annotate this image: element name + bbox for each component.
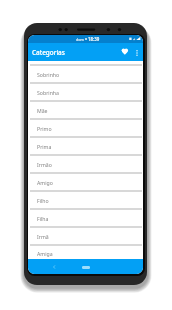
button[interactable]: Amiga	[28, 244, 143, 259]
staticText: Amiga	[37, 250, 53, 257]
staticText: 18:39	[88, 36, 100, 42]
button[interactable]: Home	[79, 262, 93, 272]
button[interactable]: Favorites	[117, 44, 131, 61]
button[interactable]: Sobrinha	[28, 82, 143, 100]
button[interactable]: Primo	[28, 118, 143, 136]
button[interactable]: Mãe	[28, 100, 143, 118]
staticText: Primo	[37, 125, 52, 132]
button[interactable]: More options	[131, 44, 143, 61]
button[interactable]: Irmão	[28, 154, 143, 172]
staticText: Sobrinho	[37, 71, 60, 78]
button[interactable]: Back	[49, 262, 58, 271]
button[interactable]: Prima	[28, 136, 143, 154]
staticText: dom	[76, 37, 84, 42]
staticText: Irmã	[37, 233, 49, 240]
staticText: Filha	[37, 215, 49, 222]
staticText: Filho	[37, 197, 49, 204]
button[interactable]: Filha	[28, 208, 143, 226]
staticText: Prima	[37, 143, 52, 150]
button[interactable]: Irmã	[28, 226, 143, 244]
button[interactable]: Amigo	[28, 172, 143, 190]
button[interactable]: Sobrinho	[28, 64, 143, 82]
staticText: Sobrinha	[37, 89, 59, 96]
button[interactable]: Filho	[28, 190, 143, 208]
staticText: Mãe	[37, 107, 48, 114]
staticText: Amigo	[37, 179, 53, 186]
staticText: Irmão	[37, 161, 52, 168]
staticText: Categorias	[32, 48, 65, 57]
